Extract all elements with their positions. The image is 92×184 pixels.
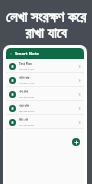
staticText: মিটিং নোট xyxy=(19,118,29,122)
staticText: শপিং লিস্ট xyxy=(19,90,28,94)
button[interactable]: মিটিং নোট xyxy=(6,115,84,129)
staticText: 10 Nov 11:24 xyxy=(19,67,35,70)
staticText: 10 Nov 11:18 xyxy=(19,81,35,84)
staticText: পড়ার রুটিন xyxy=(19,104,30,108)
staticText: Smart Note xyxy=(15,51,40,57)
button[interactable]: পড়ার রুটিন xyxy=(6,101,84,115)
staticText: রাখা যাবে xyxy=(0,22,92,42)
staticText: 09 Nov 09:42 xyxy=(19,95,35,98)
staticText: Test Plan xyxy=(19,62,32,66)
button[interactable]: অফিস কাজ xyxy=(6,73,84,87)
staticText: 08 Nov 08:10 xyxy=(19,109,35,112)
staticText: লেখা সংরক্ষণ করে xyxy=(0,6,92,26)
button[interactable]: Add note xyxy=(72,138,80,146)
button[interactable]: শপিং লিস্ট xyxy=(6,87,84,101)
button[interactable]: Test Plan xyxy=(6,59,84,73)
staticText: 07 Nov 06:30 xyxy=(19,123,35,126)
staticText: অফিস কাজ xyxy=(19,76,30,80)
